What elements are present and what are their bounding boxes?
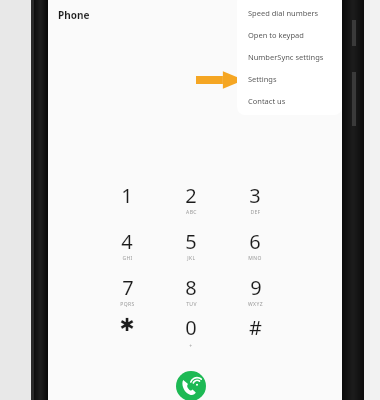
button[interactable]: NumberSync settings [237, 46, 342, 68]
button[interactable]: Settings [237, 68, 342, 90]
staticText: MNO [248, 255, 262, 262]
button[interactable]: 2 [167, 182, 215, 224]
staticText: 3 [249, 182, 261, 209]
staticText: ABC [186, 209, 197, 216]
staticText: # [249, 314, 262, 341]
button[interactable]: 0 [167, 314, 215, 356]
staticText: DEF [250, 209, 261, 216]
button[interactable]: 4 [103, 228, 151, 270]
button[interactable]: ✱ [103, 314, 151, 356]
staticText: 2 [185, 182, 197, 209]
button[interactable]: 6 [231, 228, 279, 270]
button[interactable]: 1 [103, 182, 151, 224]
staticText: GHI [122, 255, 133, 262]
staticText: Phone [58, 8, 90, 22]
staticText: 4 [121, 228, 133, 255]
staticText: 6 [249, 228, 261, 255]
button[interactable]: Call [176, 371, 206, 400]
staticText: 5 [185, 228, 197, 255]
staticText: ✱ [119, 314, 135, 335]
staticText: + [189, 343, 193, 350]
button[interactable]: Open to keypad [237, 24, 342, 46]
staticText: NumberSync settings [248, 52, 324, 62]
staticText: 7 [122, 274, 134, 301]
button[interactable]: 7 [103, 274, 151, 316]
button[interactable]: 3 [231, 182, 279, 224]
button[interactable]: 5 [167, 228, 215, 270]
staticText: PQRS [120, 301, 135, 308]
staticText: Open to keypad [248, 30, 304, 40]
staticText: 9 [250, 274, 262, 301]
staticText: Settings [248, 74, 277, 84]
button[interactable]: Speed dial numbers [237, 2, 342, 24]
staticText: WXYZ [248, 301, 263, 308]
staticText: 0 [185, 314, 197, 341]
button[interactable]: Contact us [237, 90, 342, 112]
button[interactable]: # [231, 314, 279, 356]
staticText: 1 [121, 182, 133, 209]
staticText: Speed dial numbers [248, 8, 319, 18]
button[interactable]: 9 [231, 274, 279, 316]
staticText: JKL [187, 255, 196, 262]
staticText: TUV [186, 301, 197, 308]
staticText: 8 [185, 274, 197, 301]
button[interactable]: 8 [167, 274, 215, 316]
staticText: Contact us [248, 96, 286, 106]
